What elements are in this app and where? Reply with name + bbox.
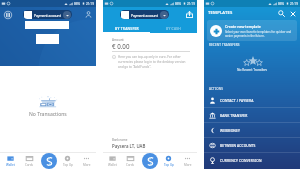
- button[interactable]: Wallet: [0, 152, 20, 169]
- button[interactable]: Paysera: [41, 153, 57, 169]
- staticText: Wallet: [108, 163, 117, 167]
- staticText: BETWEEN ACCOUNTS: [220, 143, 256, 147]
- staticText: CONTACT / PAYSERA: [220, 98, 254, 102]
- staticText: BANK TRANSFER: [220, 113, 248, 117]
- staticText: 86%: [278, 2, 285, 6]
- button[interactable]: More: [77, 152, 96, 169]
- button[interactable]: Wallet: [103, 152, 121, 169]
- button[interactable]: Cards: [20, 152, 39, 169]
- button[interactable]: Top Up: [58, 152, 77, 169]
- button[interactable]: BANK TRANSFER: [204, 108, 300, 122]
- staticText: Cards: [126, 163, 135, 167]
- staticText: Select your own favorite templates for q…: [225, 30, 294, 38]
- button[interactable]: CONTACT / PAYSERA: [204, 93, 300, 107]
- button[interactable]: Profile: [83, 9, 94, 20]
- staticText: BY CASH: [166, 26, 182, 30]
- button[interactable]: BY CASH: [150, 22, 197, 33]
- button[interactable]: More: [178, 152, 197, 169]
- staticText: € 0.00: [112, 42, 130, 50]
- staticText: Create new template: [225, 24, 261, 29]
- staticText: Here you can top-up only in euro. For ot…: [118, 55, 190, 69]
- button[interactable]: Paysera: [142, 153, 158, 169]
- staticText: 86%: [74, 2, 81, 6]
- button[interactable]: Payment account: [23, 10, 72, 19]
- button[interactable]: Search: [276, 8, 287, 19]
- button[interactable]: Create new template: [207, 20, 297, 41]
- staticText: CURRENCY CONVERSION: [220, 158, 262, 162]
- staticText: Top Up: [63, 163, 73, 167]
- staticText: 21:19: [290, 2, 298, 6]
- staticText: Payment account: [34, 13, 61, 17]
- staticText: 21:19: [187, 2, 195, 6]
- staticText: More: [184, 163, 192, 167]
- staticText: BY TRANSFER: [115, 26, 139, 30]
- button[interactable]: Payment account: [120, 10, 169, 19]
- staticText: 86%: [175, 2, 182, 6]
- staticText: ACTIONS: [209, 87, 223, 91]
- staticText: More: [83, 163, 91, 167]
- button[interactable]: BY TRANSFER: [103, 22, 150, 33]
- staticText: Amount: [112, 38, 124, 42]
- button[interactable]: Menu: [2, 9, 13, 20]
- staticText: WEBMONEY: [220, 128, 241, 132]
- staticText: Wallet: [6, 163, 15, 167]
- staticText: Top Up: [164, 163, 174, 167]
- button[interactable]: Close: [287, 8, 298, 19]
- button[interactable]: WEBMONEY: [204, 123, 300, 137]
- staticText: No Recent Transfers: [237, 68, 268, 72]
- staticText: 21:19: [86, 2, 94, 6]
- staticText: TEMPLATES: [208, 10, 233, 16]
- staticText: Bank name: [112, 138, 128, 142]
- button[interactable]: Share: [184, 9, 195, 20]
- staticText: Cards: [25, 163, 34, 167]
- staticText: No Transactions: [29, 111, 67, 118]
- staticText: RECENT TRANSFERS: [209, 43, 240, 47]
- staticText: Payment account: [131, 13, 158, 17]
- button[interactable]: CURRENCY CONVERSION: [204, 153, 300, 167]
- button[interactable]: Cards: [121, 152, 140, 169]
- staticText: Paysera LT, UAB: [112, 143, 146, 149]
- button[interactable]: BETWEEN ACCOUNTS: [204, 138, 300, 152]
- button[interactable]: Top Up: [159, 152, 178, 169]
